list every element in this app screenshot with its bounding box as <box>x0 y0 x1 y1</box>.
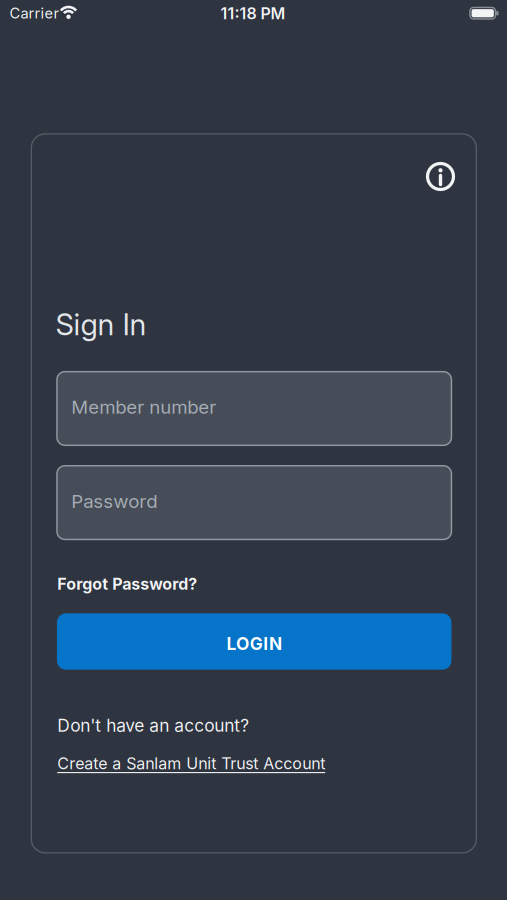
button[interactable]: Info <box>424 160 456 192</box>
button[interactable]: Member number <box>57 372 451 445</box>
staticText: Don't have an account? <box>57 715 249 736</box>
staticText: Password <box>71 490 157 512</box>
button[interactable]: LOGIN <box>57 613 451 670</box>
staticText: Sign In <box>55 307 146 342</box>
button[interactable]: Password <box>57 466 451 539</box>
staticText: 11:18 PM <box>220 4 285 23</box>
button[interactable]: Forgot Password? <box>57 575 197 593</box>
button[interactable]: Create a Sanlam Unit Trust Account <box>57 754 325 773</box>
staticText: Member number <box>71 396 216 418</box>
staticText: Forgot Password? <box>57 575 197 593</box>
staticText: Create a Sanlam Unit Trust Account <box>57 754 325 773</box>
staticText: LOGIN <box>226 634 282 654</box>
staticText: Carrier <box>9 4 59 22</box>
